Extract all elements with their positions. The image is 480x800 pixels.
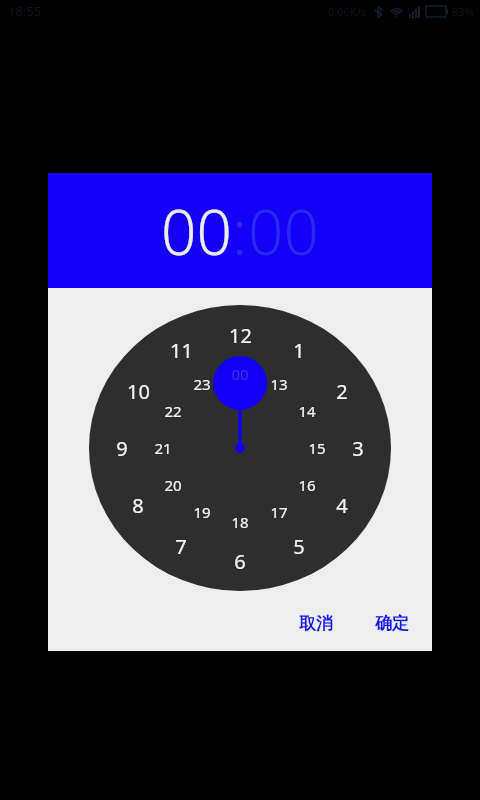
button[interactable]: 8 bbox=[120, 491, 156, 519]
staticText: 22 bbox=[164, 401, 182, 421]
button[interactable]: 20 bbox=[157, 474, 189, 496]
button[interactable]: 确定 bbox=[363, 606, 421, 641]
staticText: : bbox=[232, 189, 248, 273]
staticText: 17 bbox=[270, 502, 288, 522]
button[interactable]: 6 bbox=[222, 547, 258, 575]
staticText: 18 bbox=[231, 512, 249, 532]
staticText: 00 bbox=[231, 364, 249, 384]
button[interactable]: 13 bbox=[263, 373, 295, 395]
staticText: 2 bbox=[336, 378, 348, 405]
button[interactable]: 17 bbox=[263, 501, 295, 523]
button[interactable]: 9 bbox=[104, 434, 140, 462]
button[interactable]: 00 bbox=[224, 363, 256, 385]
staticText: 12 bbox=[229, 322, 252, 349]
staticText: 5 bbox=[293, 533, 305, 560]
staticText: 9 bbox=[116, 435, 128, 462]
button[interactable]: 15 bbox=[301, 437, 333, 459]
staticText: 0.06K/s bbox=[328, 4, 366, 19]
staticText: 取消 bbox=[299, 613, 333, 634]
button[interactable]: 1 bbox=[281, 336, 317, 364]
staticText: 15 bbox=[308, 438, 326, 458]
button[interactable]: 12 bbox=[222, 321, 258, 349]
staticText: 13 bbox=[270, 374, 288, 394]
button[interactable]: 11 bbox=[163, 336, 199, 364]
button[interactable]: 3 bbox=[340, 434, 376, 462]
button[interactable]: 23 bbox=[186, 373, 218, 395]
staticText: 19 bbox=[193, 502, 211, 522]
staticText: 10 bbox=[127, 378, 150, 405]
staticText: 11 bbox=[170, 337, 193, 364]
button[interactable]: 19 bbox=[186, 501, 218, 523]
staticText: 83% bbox=[452, 4, 474, 19]
button[interactable]: 00 bbox=[248, 189, 319, 273]
staticText: 23 bbox=[193, 374, 211, 394]
staticText: 00 bbox=[161, 189, 232, 273]
button[interactable]: 16 bbox=[291, 474, 323, 496]
staticText: 1 bbox=[293, 337, 305, 364]
staticText: 00 bbox=[248, 189, 319, 273]
staticText: 18:55 bbox=[8, 2, 42, 20]
button[interactable]: 14 bbox=[291, 400, 323, 422]
button[interactable]: 00 bbox=[161, 189, 232, 273]
staticText: 7 bbox=[175, 533, 187, 560]
button[interactable]: 5 bbox=[281, 532, 317, 560]
button[interactable]: 2 bbox=[324, 377, 360, 405]
staticText: 20 bbox=[164, 475, 182, 495]
staticText: 6 bbox=[234, 548, 246, 575]
staticText: 4 bbox=[336, 492, 348, 519]
staticText: 16 bbox=[298, 475, 316, 495]
staticText: 21 bbox=[154, 438, 172, 458]
button[interactable]: 22 bbox=[157, 400, 189, 422]
staticText: 8 bbox=[132, 492, 144, 519]
staticText: 3 bbox=[352, 435, 364, 462]
button[interactable]: 4 bbox=[324, 491, 360, 519]
button[interactable]: 10 bbox=[120, 377, 156, 405]
button[interactable]: 21 bbox=[147, 437, 179, 459]
button[interactable]: 7 bbox=[163, 532, 199, 560]
button[interactable]: 取消 bbox=[287, 606, 345, 641]
button[interactable]: 18 bbox=[224, 511, 256, 533]
staticText: 确定 bbox=[375, 613, 409, 634]
staticText: 14 bbox=[298, 401, 316, 421]
